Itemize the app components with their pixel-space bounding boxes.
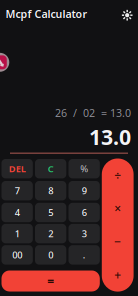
staticText: + [114, 267, 121, 283]
staticText: × [114, 200, 121, 216]
staticText: 0 [48, 249, 53, 261]
button[interactable]: C [35, 159, 66, 178]
button[interactable]: 0 [35, 245, 66, 265]
staticText: 2 [48, 227, 53, 240]
staticText: 8 [48, 184, 53, 197]
button[interactable]: 1 [1, 224, 33, 243]
button[interactable]: 9 [68, 181, 100, 200]
button[interactable]: × [102, 192, 134, 225]
staticText: − [114, 234, 121, 250]
button[interactable]: 4 [1, 203, 33, 222]
staticText: 1 [15, 227, 20, 240]
button[interactable]: − [102, 225, 134, 258]
staticText: 5 [48, 206, 53, 219]
staticText: Mcpf Calculator [5, 7, 87, 21]
staticText: ÷ [114, 167, 121, 183]
button[interactable]: 7 [1, 181, 33, 200]
staticText: 13.0 [89, 123, 131, 151]
staticText: 4 [15, 206, 20, 219]
button[interactable]: ÷ [102, 158, 134, 192]
button[interactable]: 2 [35, 224, 66, 243]
staticText: 00 [12, 249, 22, 261]
staticText: = [47, 273, 54, 289]
button[interactable]: 8 [35, 181, 66, 200]
staticText: 7 [15, 184, 20, 197]
button[interactable]: + [102, 258, 134, 292]
button[interactable]: . [68, 245, 100, 265]
staticText: 3 [82, 227, 87, 240]
button[interactable]: 3 [68, 224, 100, 243]
button[interactable]: Brightness [119, 7, 135, 23]
staticText: 9 [82, 184, 87, 197]
button[interactable]: 00 [1, 245, 33, 265]
staticText: DEL [9, 162, 26, 175]
staticText: C [48, 162, 54, 175]
button[interactable]: 5 [35, 203, 66, 222]
staticText: . [83, 249, 86, 261]
staticText: % [80, 162, 88, 175]
button[interactable]: = [1, 270, 100, 291]
button[interactable]: DEL [1, 159, 33, 178]
staticText: 26 / 02 = 13.0 [55, 106, 131, 120]
staticText: 6 [82, 206, 87, 219]
button[interactable]: % [68, 159, 100, 178]
button[interactable]: 6 [68, 203, 100, 222]
